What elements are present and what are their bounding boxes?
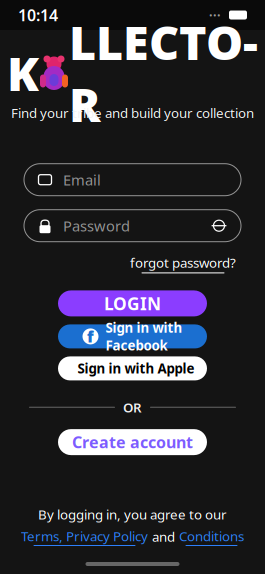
staticText: Conditions — [179, 527, 244, 545]
staticText: and — [152, 528, 175, 545]
button[interactable] — [58, 356, 207, 380]
staticText: f — [87, 326, 94, 347]
button[interactable]: Create account — [58, 429, 207, 455]
staticText: Sign in with Facebook — [105, 319, 182, 354]
button[interactable]: Conditions — [179, 527, 244, 546]
staticText: Sign in with Apple — [77, 360, 194, 377]
staticText: Email — [63, 170, 101, 189]
staticText: Create account — [72, 431, 193, 453]
staticText: Password — [63, 216, 130, 235]
button[interactable]: LOGIN — [58, 290, 207, 316]
staticText: ••• — [209, 9, 221, 21]
button[interactable]: Terms, Privacy Policy — [21, 527, 148, 546]
staticText: Terms, Privacy Policy — [21, 527, 148, 545]
button[interactable]: Show password — [210, 217, 228, 235]
staticText: K — [7, 42, 39, 104]
staticText: LLECTOR — [69, 11, 258, 135]
button[interactable]: f — [58, 324, 207, 348]
staticText: Find your tribe and build your collectio… — [11, 104, 254, 122]
staticText: OR — [123, 398, 142, 416]
button[interactable]: forgot password? — [130, 254, 236, 273]
staticText: By logging in, you agree to our — [38, 506, 227, 523]
staticText: LOGIN — [104, 292, 161, 315]
staticText: forgot password? — [130, 254, 236, 271]
staticText: 10:14 — [18, 4, 58, 26]
